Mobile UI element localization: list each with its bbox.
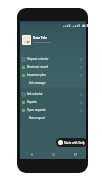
- button[interactable]: Insurance plan: [20, 71, 86, 79]
- staticText: Electronic record: [27, 65, 49, 69]
- button[interactable]: Made with Visily: [56, 138, 87, 147]
- button[interactable]: Back: [20, 151, 42, 158]
- staticText: Request a doctor: [27, 57, 49, 61]
- staticText: Insurance plan: [27, 73, 46, 77]
- staticText: Ask a doctor: [27, 92, 43, 96]
- staticText: Made with Visily: [64, 141, 85, 145]
- staticText: medical information: [33, 41, 51, 44]
- button[interactable]: New request: [20, 114, 86, 122]
- button[interactable]: Request a doctor: [20, 55, 86, 63]
- button[interactable]: Recents: [64, 151, 86, 158]
- button[interactable]: Get message: [20, 79, 86, 87]
- button[interactable]: Ask a doctor: [20, 90, 86, 98]
- button[interactable]: Home: [42, 151, 64, 158]
- staticText: Reports: [27, 100, 37, 104]
- button[interactable]: Open requests: [20, 106, 86, 114]
- staticText: Data Tele: [33, 36, 47, 40]
- button[interactable]: Electronic record: [20, 63, 86, 71]
- staticText: Get message: [29, 81, 46, 85]
- button[interactable]: Reports: [20, 98, 86, 106]
- staticText: New request: [29, 116, 45, 120]
- staticText: Open requests: [27, 108, 46, 112]
